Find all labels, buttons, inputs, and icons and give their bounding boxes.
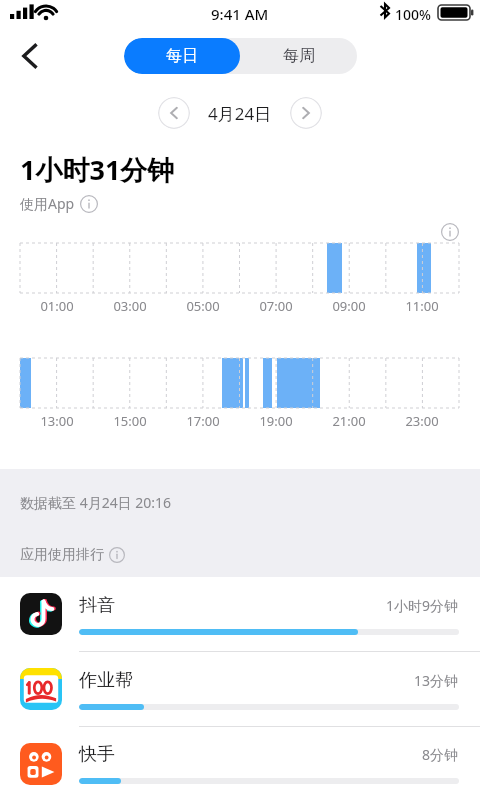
staticText: 4月24日 — [208, 102, 272, 125]
staticText: 09:00 — [319, 297, 379, 315]
button[interactable]: Previous day — [158, 97, 190, 129]
button[interactable]: 快手 — [0, 727, 480, 800]
button[interactable]: Back — [8, 34, 52, 78]
staticText: 15:00 — [100, 412, 160, 430]
staticText: 13:00 — [27, 412, 87, 430]
staticText: 使用App — [20, 194, 75, 213]
button[interactable]: Next day — [290, 97, 322, 129]
button[interactable]: Info — [441, 223, 459, 241]
staticText: 23:00 — [392, 412, 452, 430]
staticText: 21:00 — [319, 412, 379, 430]
staticText: 数据截至 4月24日 20:16 — [20, 493, 172, 512]
button[interactable]: 作业帮 — [0, 652, 480, 726]
button[interactable]: 抖音 — [0, 577, 480, 651]
staticText: 每周 — [283, 46, 315, 66]
staticText: 9:41 AM — [211, 4, 269, 24]
button[interactable]: 每周 — [240, 38, 357, 74]
staticText: 快手 — [79, 743, 422, 766]
staticText: 1小时31分钟 — [20, 151, 175, 188]
staticText: 07:00 — [246, 297, 306, 315]
staticText: 19:00 — [246, 412, 306, 430]
staticText: 应用使用排行 — [20, 546, 104, 564]
staticText: 03:00 — [100, 297, 160, 315]
staticText: 11:00 — [392, 297, 452, 315]
staticText: 每日 — [166, 46, 198, 66]
staticText: 05:00 — [173, 297, 233, 315]
staticText: 13分钟 — [414, 671, 459, 690]
staticText: 抖音 — [79, 594, 386, 617]
staticText: 01:00 — [27, 297, 87, 315]
staticText: 1小时9分钟 — [386, 596, 459, 615]
staticText: 作业帮 — [79, 669, 414, 692]
staticText: 17:00 — [173, 412, 233, 430]
staticText: 8分钟 — [422, 745, 459, 764]
staticText: 100% — [395, 5, 431, 24]
button[interactable]: 每日 — [124, 38, 240, 74]
